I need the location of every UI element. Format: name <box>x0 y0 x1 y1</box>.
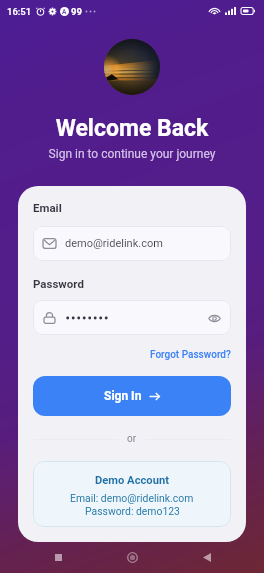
button[interactable]: Recents <box>41 542 75 573</box>
staticText: 16:51 <box>7 6 32 17</box>
staticText: demo@ridelink.com <box>65 237 222 250</box>
button[interactable]: Home <box>115 542 149 573</box>
staticText: Sign In <box>104 389 142 403</box>
staticText: Welcome Back <box>0 115 264 142</box>
button[interactable]: Forgot Password? <box>150 349 231 361</box>
staticText: Password <box>33 277 84 290</box>
button[interactable]: Sign In <box>33 376 231 416</box>
staticText: Email: demo@ridelink.com <box>70 492 194 504</box>
staticText: Sign in to continue your journey <box>0 147 264 161</box>
staticText: or <box>127 433 137 445</box>
staticText: Email <box>33 201 62 214</box>
staticText: A <box>62 8 67 16</box>
button[interactable]: Back <box>190 542 224 573</box>
button[interactable]: Show password <box>206 310 222 326</box>
button[interactable]: demo@ridelink.com <box>33 226 231 261</box>
button[interactable]: Show password <box>33 300 231 335</box>
staticText: Forgot Password? <box>150 349 231 361</box>
staticText: Demo Account <box>95 474 169 487</box>
staticText: 99 <box>71 6 82 17</box>
button[interactable]: Demo Account <box>33 461 231 527</box>
staticText: Password: demo123 <box>85 505 180 517</box>
